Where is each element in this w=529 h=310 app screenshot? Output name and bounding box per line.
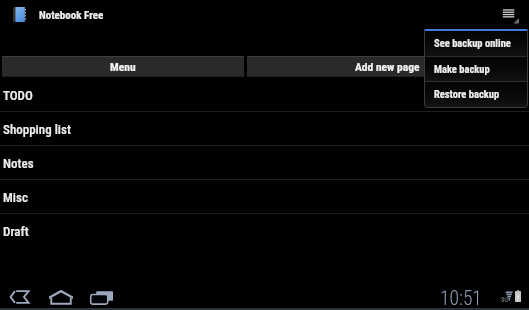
button[interactable]: Menu: [2, 56, 244, 77]
staticText: Notes: [3, 156, 34, 171]
button[interactable]: Misc: [0, 180, 529, 214]
staticText: Misc: [3, 190, 28, 205]
button[interactable]: More options: [496, 0, 527, 29]
button[interactable]: Notes: [0, 146, 529, 180]
staticText: Draft: [3, 224, 29, 239]
button[interactable]: Add new page: [247, 56, 527, 77]
button[interactable]: Recent apps: [90, 287, 114, 305]
staticText: Restore backup: [434, 88, 500, 100]
staticText: See backup online: [434, 37, 511, 49]
staticText: Make backup: [434, 63, 490, 75]
button[interactable]: Back: [6, 287, 34, 305]
staticText: Notebook Free: [39, 9, 104, 22]
staticText: Add new page: [355, 60, 420, 73]
button[interactable]: Make backup: [425, 57, 527, 82]
button[interactable]: Draft: [0, 214, 529, 248]
staticText: Menu: [110, 60, 136, 73]
button[interactable]: Home: [46, 287, 76, 305]
staticText: 3G: [501, 296, 509, 304]
button[interactable]: Restore backup: [425, 82, 527, 107]
button[interactable]: Shopping list: [0, 112, 529, 146]
button[interactable]: TODO: [0, 78, 529, 112]
staticText: Shopping list: [3, 122, 71, 137]
button[interactable]: See backup online: [425, 31, 527, 57]
staticText: 10:51: [440, 287, 482, 310]
staticText: TODO: [3, 88, 33, 103]
